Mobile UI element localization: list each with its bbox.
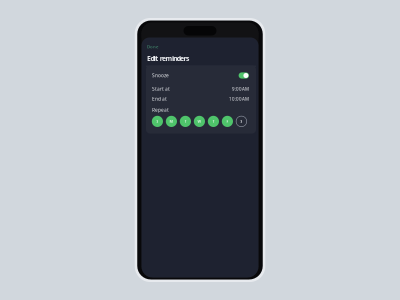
button[interactable]: F [222, 116, 233, 127]
staticText: S [156, 119, 158, 124]
staticText: 10:00AM [229, 96, 249, 102]
button[interactable]: T [208, 116, 219, 127]
staticText: Start at [152, 86, 170, 92]
staticText: Repeat [152, 107, 169, 113]
staticText: W [197, 119, 201, 124]
button[interactable]: T [180, 116, 191, 127]
staticText: T [212, 119, 214, 124]
button[interactable]: S [152, 116, 163, 127]
button[interactable]: Start at [146, 84, 256, 94]
staticText: End at [152, 96, 167, 102]
staticText: M [169, 119, 173, 124]
staticText: Edit [147, 54, 158, 63]
staticText: Snooze [152, 72, 169, 79]
staticText: T [184, 119, 186, 124]
staticText: S [240, 119, 242, 124]
button[interactable]: End at [146, 94, 256, 104]
staticText: Done [147, 44, 158, 49]
button[interactable]: Snooze [146, 67, 256, 84]
button[interactable]: Done [141, 37, 158, 49]
staticText: 9:00AM [232, 86, 249, 92]
button[interactable]: M [166, 116, 177, 127]
staticText: F [226, 119, 228, 124]
staticText: reminders [160, 54, 189, 63]
button[interactable]: W [194, 116, 205, 127]
button[interactable]: S [236, 116, 247, 127]
